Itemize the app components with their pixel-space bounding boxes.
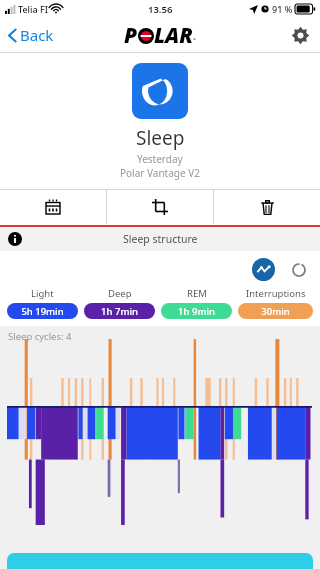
staticText: 13.56 — [148, 3, 173, 16]
staticText: 1h 7min — [101, 305, 138, 318]
staticText: Light — [31, 287, 54, 300]
staticText: 5h 19min — [21, 305, 64, 318]
staticText: Yesterday — [137, 152, 183, 166]
button[interactable]: Settings — [288, 23, 312, 47]
button[interactable]: REM — [158, 287, 235, 319]
staticText: . — [193, 28, 197, 43]
staticText: Sleep — [136, 125, 185, 151]
button[interactable] — [7, 553, 313, 569]
button[interactable]: Sleep structure chart — [252, 258, 275, 281]
button[interactable]: Interruptions — [235, 287, 316, 319]
staticText: LAR — [154, 21, 193, 50]
button[interactable]: Crop — [107, 189, 213, 225]
staticText: 91 % — [272, 3, 293, 15]
staticText: 30min — [261, 305, 290, 318]
button[interactable]: Light — [4, 287, 81, 319]
staticText: REM — [187, 287, 207, 300]
button[interactable]: Calendar — [0, 189, 106, 225]
staticText: Back — [20, 25, 54, 45]
staticText: Deep — [108, 287, 132, 300]
staticText: Interruptions — [246, 287, 306, 300]
button[interactable]: Back — [6, 21, 56, 49]
staticText: Sleep structure — [123, 232, 198, 246]
button[interactable]: Delete — [214, 189, 320, 225]
button[interactable]: Sleep structure — [0, 227, 320, 251]
staticText: Polar Vantage V2 — [120, 166, 200, 180]
staticText: 1h 9min — [178, 305, 215, 318]
staticText: Telia FI — [18, 3, 48, 15]
staticText: Sleep cycles: 4 — [8, 330, 72, 343]
staticText: P — [124, 21, 138, 50]
button[interactable]: Sleep cycles — [287, 258, 310, 281]
button[interactable]: Deep — [81, 287, 158, 319]
